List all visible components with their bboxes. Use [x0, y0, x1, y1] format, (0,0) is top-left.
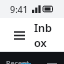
staticText: Inbox [34, 20, 56, 50]
button[interactable]: Menu [8, 24, 30, 46]
staticText: Recent [6, 59, 29, 64]
staticText: 9:41 [10, 3, 28, 15]
